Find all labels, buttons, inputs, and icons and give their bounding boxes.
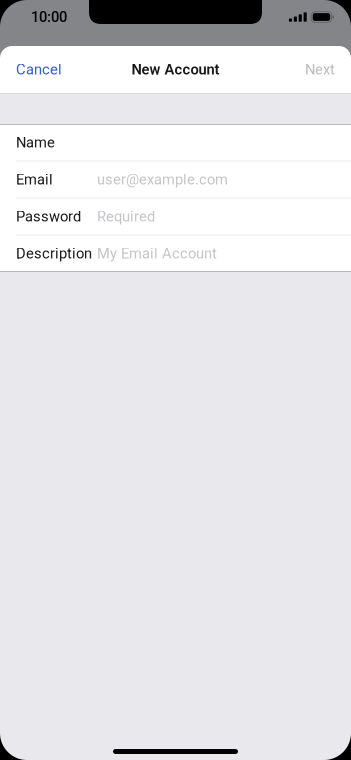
staticText: Required bbox=[97, 208, 155, 225]
button[interactable]: Password bbox=[0, 198, 351, 235]
button[interactable]: Email bbox=[0, 161, 351, 198]
staticText: New Account bbox=[131, 61, 219, 78]
staticText: Name bbox=[16, 134, 55, 151]
button[interactable]: Name bbox=[0, 124, 351, 161]
staticText: Next bbox=[305, 61, 335, 78]
button[interactable]: Next bbox=[289, 46, 351, 93]
staticText: My Email Account bbox=[97, 245, 217, 262]
staticText: Password bbox=[16, 208, 81, 225]
staticText: Description bbox=[16, 245, 92, 262]
staticText: Cancel bbox=[16, 61, 62, 78]
staticText: Email bbox=[16, 171, 53, 188]
button[interactable]: Description bbox=[0, 235, 351, 271]
staticText: 10:00 bbox=[31, 8, 67, 26]
button[interactable]: Cancel bbox=[0, 46, 78, 93]
staticText: user@example.com bbox=[97, 171, 228, 188]
